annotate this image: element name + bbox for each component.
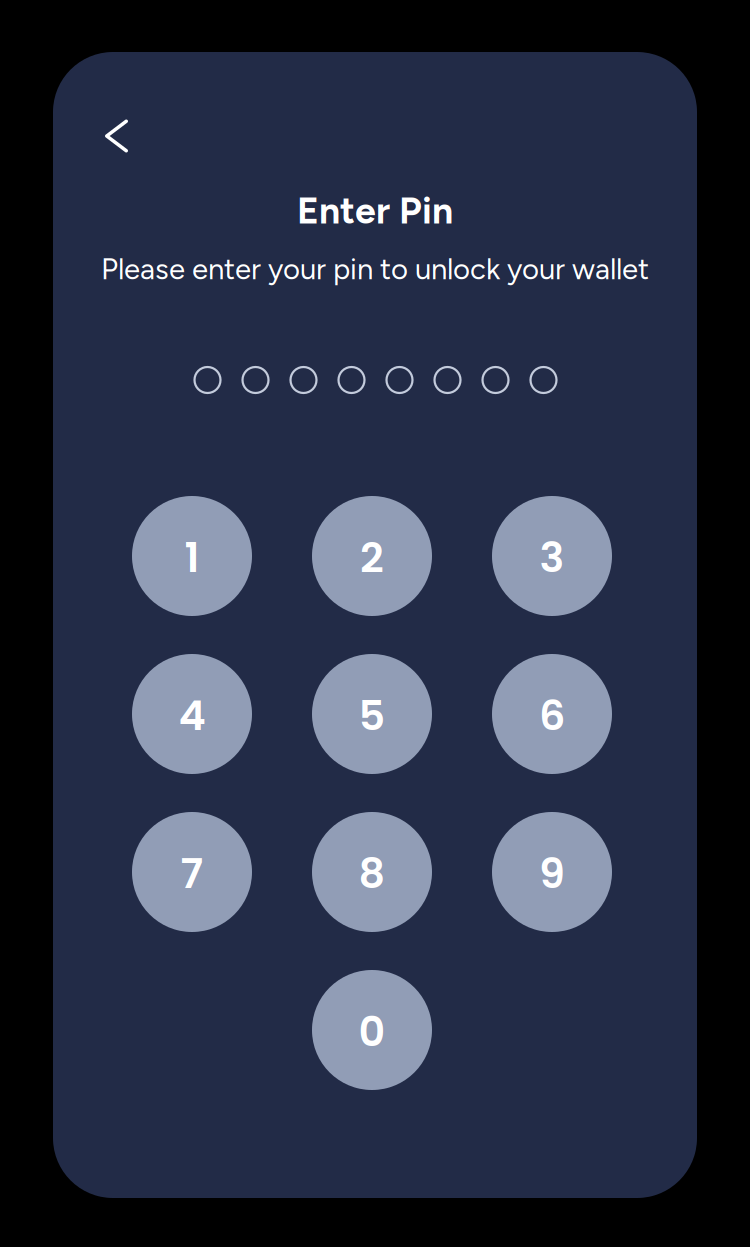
staticText: 3 <box>539 529 564 586</box>
button[interactable]: 9 <box>492 812 612 932</box>
staticText: Please enter your pin to unlock your wal… <box>101 251 649 287</box>
staticText: 9 <box>539 845 565 902</box>
staticText: 4 <box>178 687 205 744</box>
staticText: 6 <box>539 687 565 744</box>
button[interactable]: Back <box>86 106 146 166</box>
staticText: Enter Pin <box>297 188 453 233</box>
staticText: 5 <box>358 687 385 744</box>
staticText: 1 <box>184 529 199 586</box>
staticText: 7 <box>180 845 203 902</box>
staticText: 2 <box>360 529 384 586</box>
button[interactable]: 7 <box>132 812 252 932</box>
button[interactable]: 4 <box>132 654 252 774</box>
staticText: 0 <box>358 1003 385 1060</box>
button[interactable]: 8 <box>312 812 432 932</box>
button[interactable]: 3 <box>492 496 612 616</box>
button[interactable]: 6 <box>492 654 612 774</box>
button[interactable]: 5 <box>312 654 432 774</box>
button[interactable]: 0 <box>312 970 432 1090</box>
button[interactable]: 2 <box>312 496 432 616</box>
staticText: 8 <box>358 845 385 902</box>
button[interactable]: 1 <box>132 496 252 616</box>
